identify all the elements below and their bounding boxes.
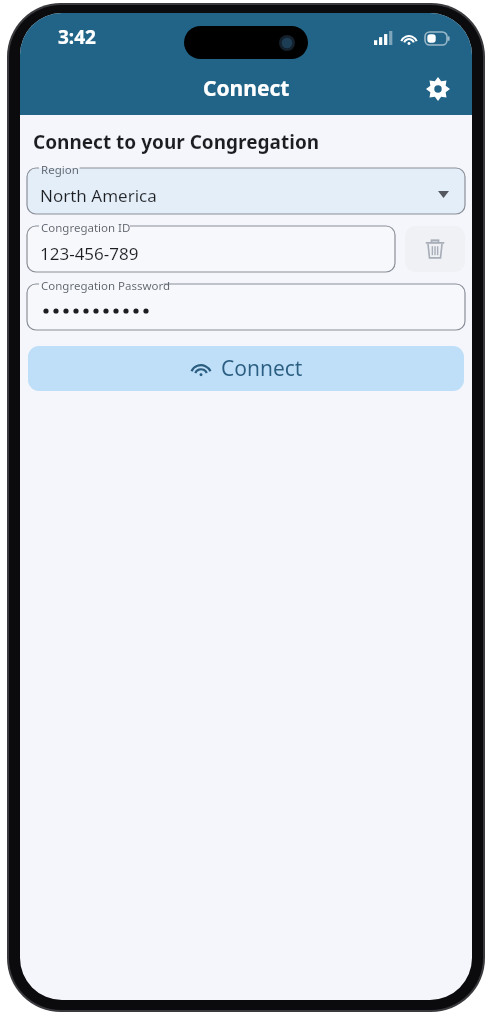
button[interactable] [27,284,465,330]
staticText: 3:42 [58,24,96,50]
staticText: Connect [203,74,290,103]
button[interactable]: Delete [405,226,465,272]
staticText: Region [41,162,79,178]
button[interactable] [27,168,465,214]
staticText: Congregation Password [41,278,171,294]
button[interactable] [27,226,395,272]
button[interactable]: Settings [416,67,460,111]
staticText: 123-456-789 [40,242,139,265]
staticText: Congregation ID [41,220,131,236]
staticText: Connect [221,354,303,383]
staticText: North America [40,184,157,207]
button[interactable]: Connect [28,346,464,391]
staticText: Connect to your Congregation [33,129,320,155]
